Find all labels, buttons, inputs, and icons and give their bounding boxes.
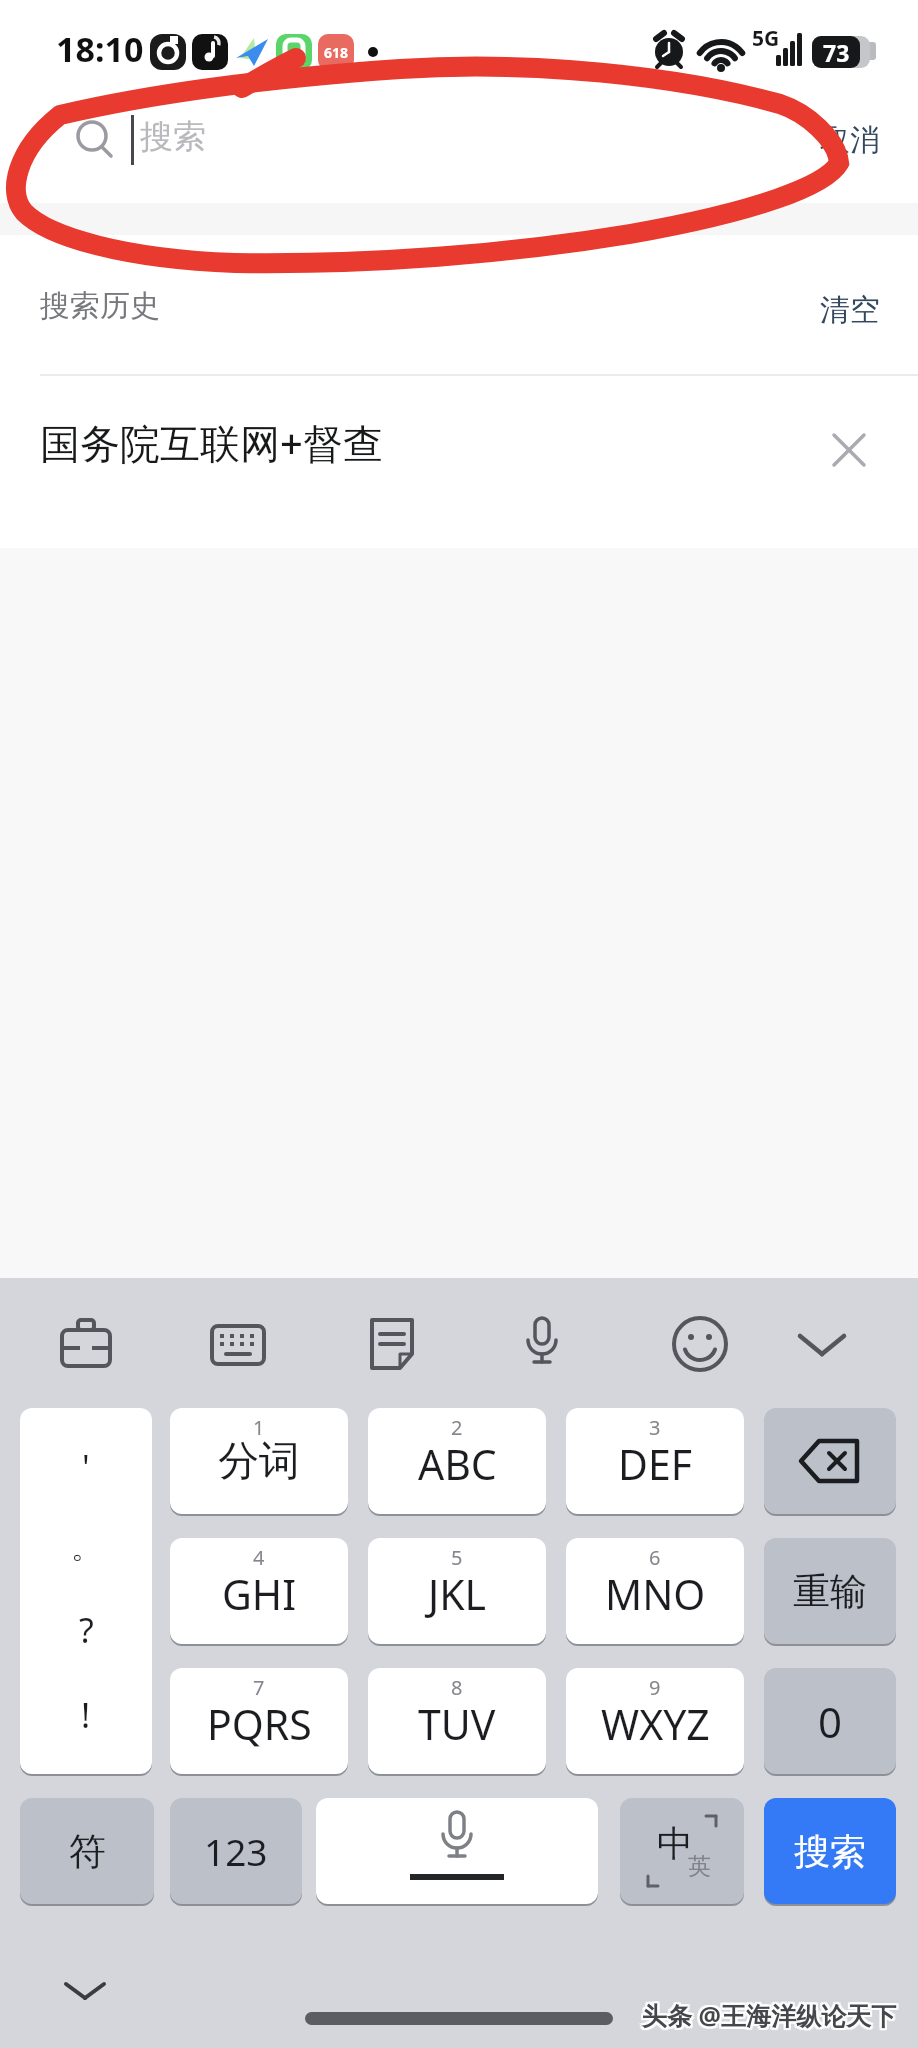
button[interactable]: 8	[368, 1668, 546, 1774]
staticText: 头条 @王海洋纵论天下	[644, 1998, 898, 2032]
button[interactable]: 6	[566, 1538, 744, 1644]
staticText: GHI	[222, 1566, 297, 1622]
staticText: 9	[649, 1674, 661, 1701]
staticText: 5	[451, 1544, 463, 1571]
button[interactable]	[764, 1408, 896, 1514]
staticText: 头条 @王海洋纵论天下	[644, 1996, 898, 2030]
staticText: 8	[451, 1674, 463, 1701]
staticText: 头条 @王海洋纵论天下	[640, 1998, 894, 2032]
staticText: 头条 @王海洋纵论天下	[640, 1996, 894, 2030]
staticText: JKL	[428, 1566, 487, 1622]
staticText: 重输	[793, 1568, 867, 1615]
button[interactable]: 7	[170, 1668, 348, 1774]
staticText: 2	[451, 1414, 463, 1441]
staticText: 分词	[218, 1436, 300, 1488]
button[interactable]: 9	[566, 1668, 744, 1774]
staticText: TUV	[418, 1696, 496, 1752]
staticText: 搜索	[140, 116, 206, 158]
staticText: 清空	[820, 291, 880, 329]
staticText: 4	[253, 1544, 265, 1571]
staticText: 618	[324, 43, 349, 62]
staticText: 搜索历史	[40, 287, 160, 325]
button[interactable]: 2	[368, 1408, 546, 1514]
button[interactable]: 取消	[820, 121, 880, 159]
staticText: 18:10	[56, 26, 144, 72]
button[interactable]: 123	[170, 1798, 302, 1904]
button[interactable]	[316, 1798, 598, 1904]
staticText: 123	[204, 1826, 268, 1876]
button[interactable]: 4	[170, 1538, 348, 1644]
staticText: 3	[649, 1414, 661, 1441]
staticText: 英	[688, 1852, 711, 1881]
button[interactable]: 国务院互联网+督查	[0, 405, 918, 495]
staticText: '	[82, 1444, 90, 1490]
staticText: ABC	[418, 1436, 497, 1492]
button[interactable]: 0	[764, 1668, 896, 1774]
staticText: 0	[818, 1693, 843, 1750]
staticText: 头条 @王海洋纵论天下	[640, 2000, 894, 2034]
button[interactable]: 符	[20, 1798, 154, 1904]
staticText: 5G	[752, 24, 780, 53]
button[interactable]: 中	[620, 1798, 744, 1904]
staticText: 。	[71, 1529, 101, 1567]
staticText: 7	[253, 1674, 265, 1701]
staticText: 中	[657, 1821, 693, 1866]
staticText: PQRS	[207, 1696, 312, 1752]
staticText: 73	[823, 37, 850, 68]
staticText: WXYZ	[601, 1696, 710, 1752]
staticText: 符	[69, 1828, 106, 1875]
staticText: 6	[649, 1544, 661, 1571]
staticText: 头条 @王海洋纵论天下	[644, 2000, 898, 2034]
button[interactable]: 重输	[764, 1538, 896, 1644]
button[interactable]: 5	[368, 1538, 546, 1644]
staticText: 头条 @王海洋纵论天下	[642, 1996, 896, 2030]
staticText: 1	[253, 1414, 265, 1441]
staticText: 搜索	[794, 1829, 866, 1874]
staticText: 头条 @王海洋纵论天下	[642, 2000, 896, 2034]
button[interactable]: 3	[566, 1408, 744, 1514]
staticText: 头条 @王海洋纵论天下	[642, 1998, 896, 2032]
staticText: ?	[79, 1607, 94, 1653]
button[interactable]: 搜索	[764, 1798, 896, 1904]
staticText: 取消	[820, 121, 880, 159]
staticText: MNO	[605, 1566, 706, 1622]
staticText: DEF	[618, 1436, 693, 1492]
staticText: 国务院互联网+督查	[40, 415, 383, 470]
button[interactable]: '	[20, 1408, 152, 1774]
staticText: !	[81, 1692, 91, 1738]
button[interactable]: 清空	[820, 291, 880, 329]
button[interactable]: 1	[170, 1408, 348, 1514]
